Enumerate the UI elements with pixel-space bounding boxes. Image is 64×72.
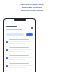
staticText: Extract insights and (0, 2, 64, 5)
button[interactable] (6, 55, 33, 60)
staticText: directly from notes (0, 8, 64, 11)
button[interactable] (6, 63, 33, 68)
button[interactable]: Send (26, 33, 33, 36)
button[interactable] (6, 33, 24, 36)
staticText: generate content (0, 5, 64, 8)
button[interactable] (6, 47, 33, 52)
button[interactable] (6, 39, 33, 44)
